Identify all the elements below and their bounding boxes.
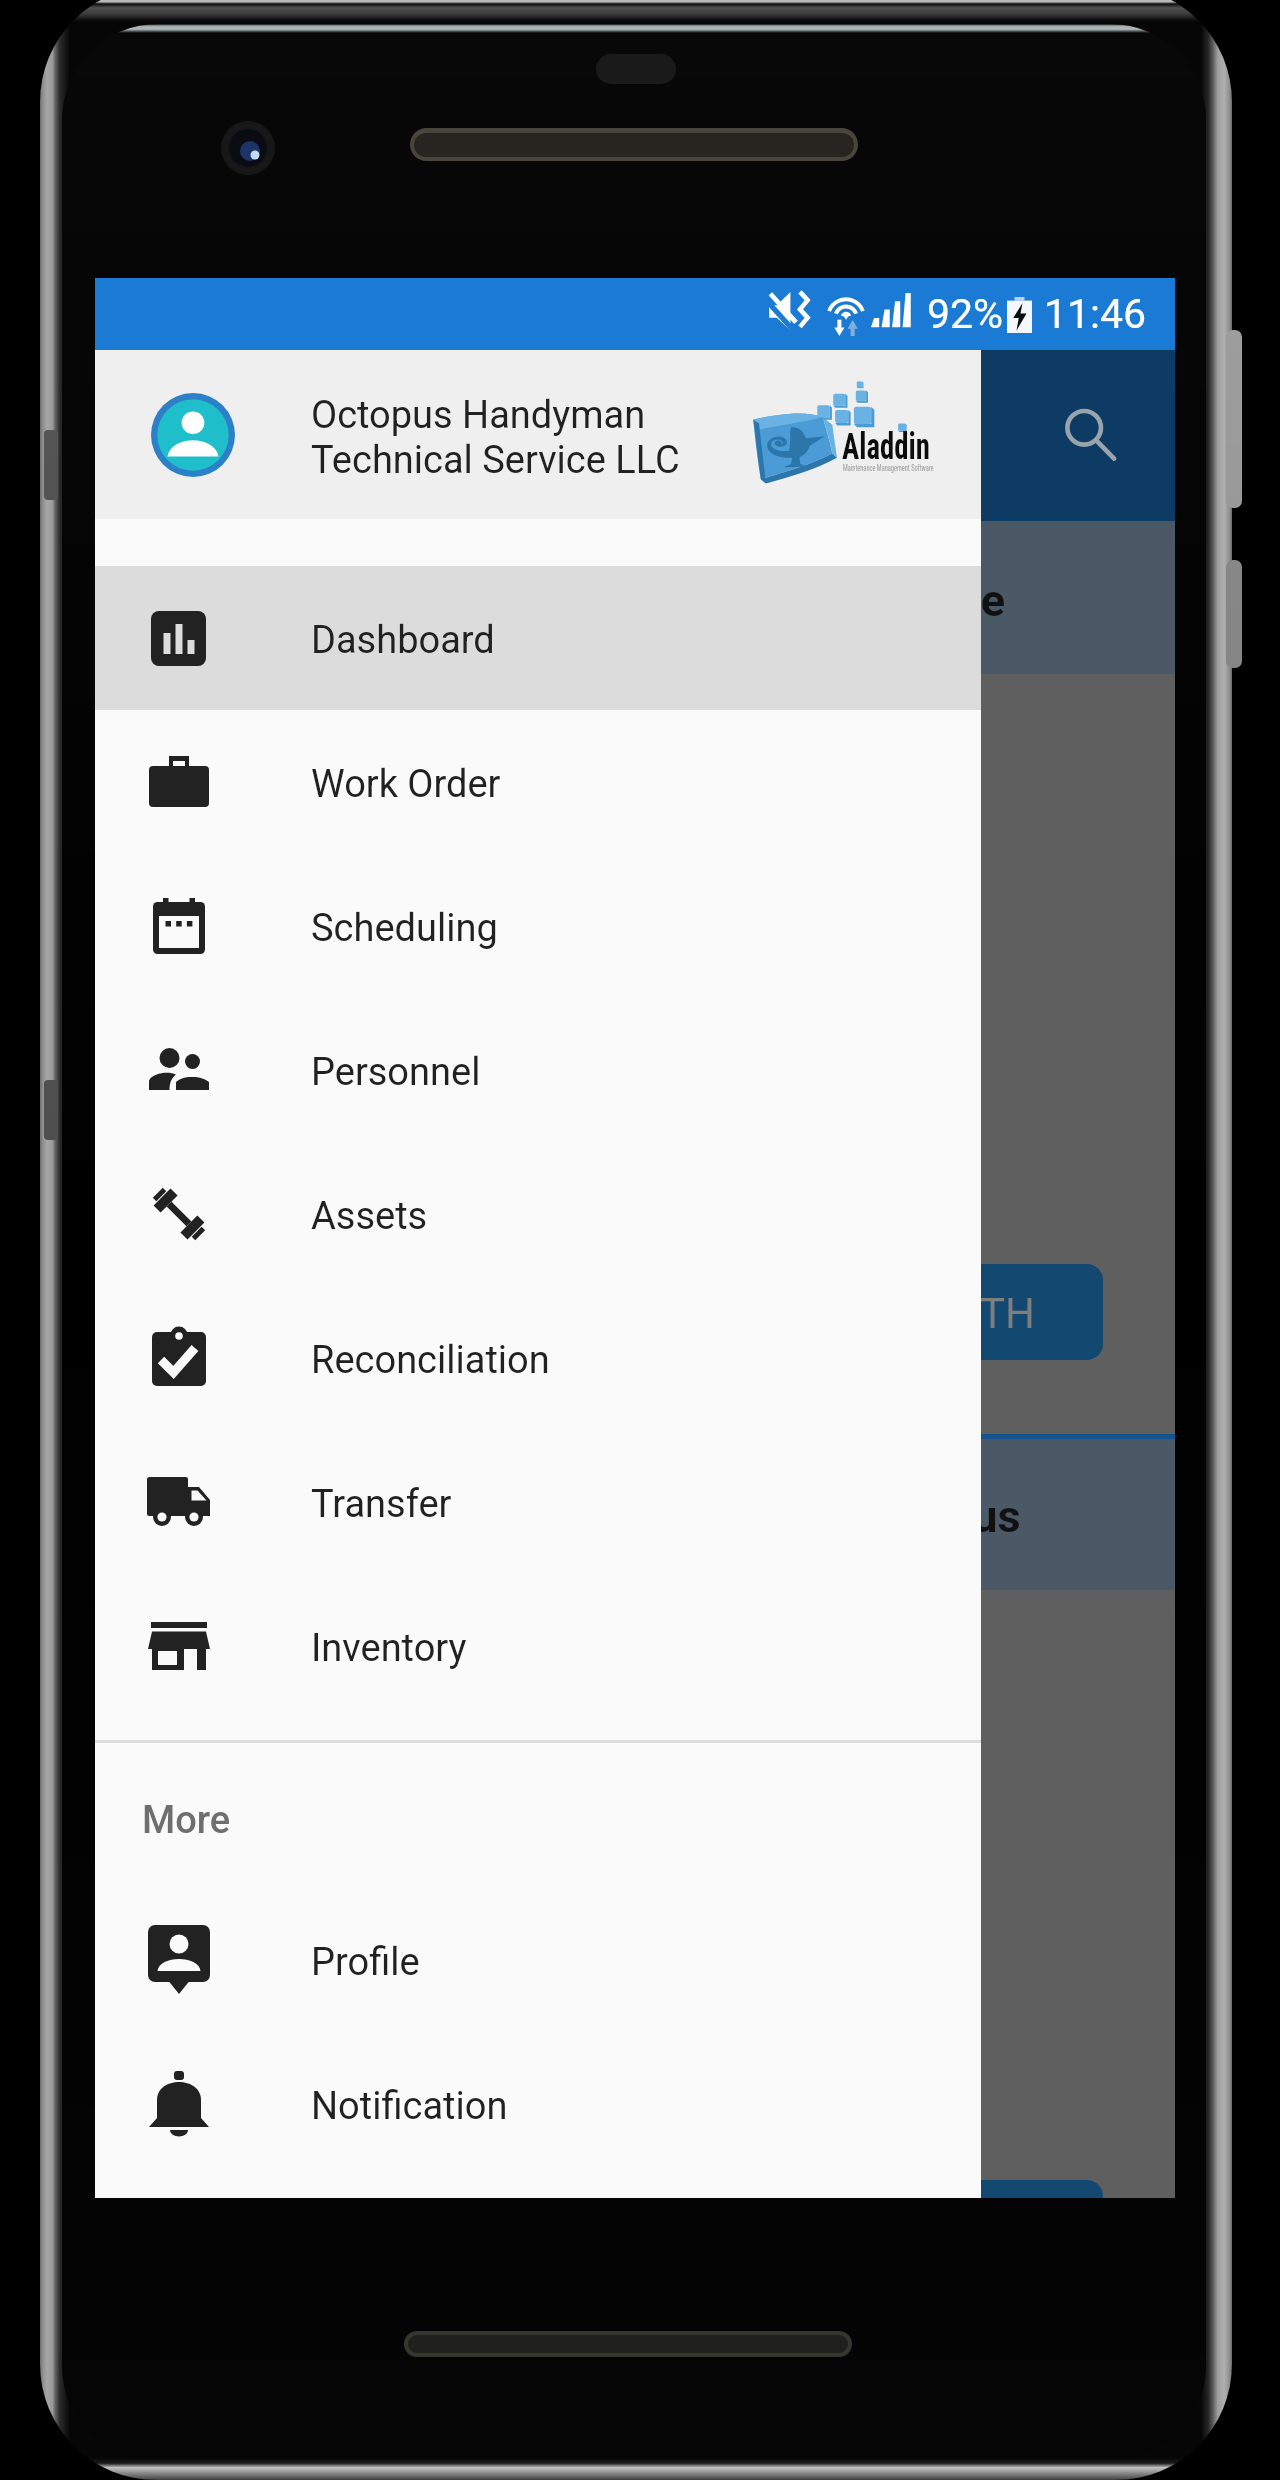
staticText: Notification [311, 2084, 508, 2129]
staticText: 11:46 [1044, 290, 1147, 338]
button[interactable]: Assets [95, 1142, 981, 1286]
staticText: Personnel [311, 1050, 481, 1095]
button[interactable]: Reconciliation [95, 1286, 981, 1430]
staticText: Profile [311, 1940, 420, 1985]
staticText: Work Order [311, 762, 501, 807]
button[interactable]: Personnel [95, 998, 981, 1142]
staticText: More [142, 1798, 231, 1843]
button[interactable]: Transfer [95, 1430, 981, 1574]
staticText: MONTH [933, 1289, 1035, 1338]
button[interactable]: MONTH [933, 1264, 1103, 1360]
staticText: 92% [927, 290, 1004, 338]
button[interactable]: Octopus Handyman [95, 350, 981, 519]
button[interactable]: Inventory [95, 1574, 981, 1718]
staticText: Reconciliation [311, 1338, 550, 1383]
button[interactable]: Dashboard [95, 566, 981, 710]
staticText: Assets [311, 1194, 428, 1239]
button[interactable]: Notification [95, 2032, 981, 2176]
staticText: Aladdin [842, 426, 931, 468]
button[interactable]: Profile [95, 1888, 981, 2032]
button[interactable]: Scheduling [95, 854, 981, 998]
staticText: Scheduling [311, 906, 498, 951]
staticText: Welcome [818, 574, 1006, 627]
staticText: Inventory [311, 1626, 467, 1671]
staticText: Octopus Handyman [311, 393, 646, 438]
staticText: Dashboard [311, 618, 495, 663]
staticText: Transfer [311, 1482, 452, 1527]
button[interactable]: Search [1037, 382, 1143, 488]
staticText: Technical Service LLC [311, 438, 680, 483]
staticText: Maintenance Management Software [843, 462, 934, 473]
button[interactable] [933, 2180, 1103, 2198]
staticText: Status [890, 1490, 1021, 1543]
button[interactable]: Work Order [95, 710, 981, 854]
